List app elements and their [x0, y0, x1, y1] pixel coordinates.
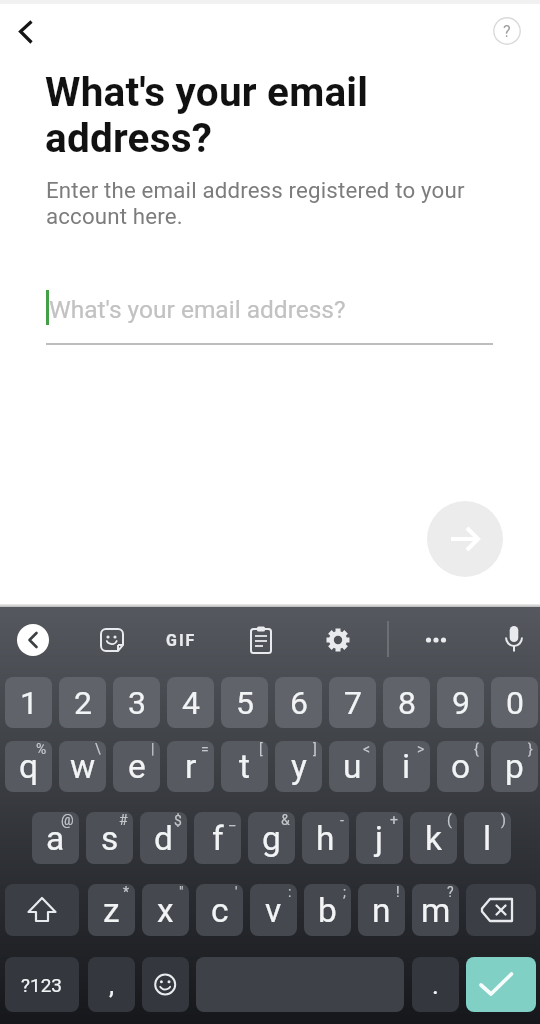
staticText: o	[451, 747, 471, 786]
button[interactable]: ?	[490, 14, 524, 48]
button[interactable]: s	[86, 812, 133, 864]
button[interactable]: q	[5, 741, 52, 792]
button[interactable]: t	[221, 741, 268, 792]
button[interactable]	[427, 501, 503, 577]
staticText: ]	[313, 741, 317, 757]
button[interactable]: k	[410, 812, 457, 864]
staticText: e	[128, 747, 146, 786]
button[interactable]: 2	[59, 677, 106, 728]
staticText: |	[151, 741, 155, 757]
button[interactable]: l	[464, 812, 511, 864]
button[interactable]	[8, 10, 50, 52]
staticText: $	[174, 812, 182, 828]
staticText: }	[528, 741, 533, 757]
staticText: a	[46, 819, 65, 858]
staticText: 1	[20, 684, 38, 722]
staticText: {	[474, 741, 479, 757]
staticText: !	[396, 884, 400, 900]
button[interactable]	[466, 957, 536, 1012]
staticText: Enter the email address registered to yo…	[46, 177, 465, 230]
button[interactable]: e	[113, 741, 160, 792]
button[interactable]: .	[412, 957, 459, 1012]
button[interactable]: d	[140, 812, 187, 864]
staticText: #	[119, 812, 128, 828]
button[interactable]: m	[412, 884, 459, 936]
button[interactable]	[241, 620, 281, 660]
button[interactable]: a	[32, 812, 79, 864]
button[interactable]: 8	[383, 677, 430, 728]
button[interactable]: f	[194, 812, 241, 864]
staticText: ;	[343, 884, 346, 900]
button[interactable]: x	[142, 884, 189, 936]
staticText: &	[281, 812, 290, 828]
button[interactable]: y	[275, 741, 322, 792]
staticText: [	[259, 741, 263, 757]
button[interactable]	[494, 620, 534, 660]
staticText: y	[291, 747, 307, 786]
button[interactable]: w	[59, 741, 106, 792]
staticText: GIF	[166, 631, 197, 650]
button[interactable]	[17, 624, 49, 656]
button[interactable]: GIF	[157, 624, 205, 656]
button[interactable]: 7	[329, 677, 376, 728]
button[interactable]	[92, 620, 132, 660]
button[interactable]: 0	[491, 677, 538, 728]
button[interactable]: j	[356, 812, 403, 864]
staticText: 5	[236, 684, 254, 722]
staticText: p	[505, 747, 524, 786]
button[interactable]: 3	[113, 677, 160, 728]
staticText: 8	[398, 684, 416, 722]
staticText: g	[262, 819, 281, 858]
staticText: k	[425, 819, 442, 858]
button[interactable]	[5, 884, 79, 936]
button[interactable]: 1	[5, 677, 52, 728]
staticText: x	[157, 891, 174, 930]
staticText: 7	[344, 684, 362, 722]
staticText: *	[123, 884, 130, 900]
staticText: ?	[503, 22, 511, 41]
staticText: n	[372, 891, 391, 930]
staticText: v	[265, 891, 282, 930]
button[interactable]: 6	[275, 677, 322, 728]
button[interactable]: ?123	[5, 957, 79, 1012]
button[interactable]: v	[250, 884, 297, 936]
button[interactable]: z	[88, 884, 135, 936]
button[interactable]: r	[167, 741, 214, 792]
staticText: _	[229, 812, 236, 828]
staticText: @	[61, 812, 74, 828]
staticText: >	[417, 741, 425, 757]
button[interactable]	[142, 957, 189, 1012]
staticText: "	[179, 884, 184, 900]
button[interactable]: c	[196, 884, 243, 936]
staticText: ?	[447, 884, 454, 900]
button[interactable]	[466, 884, 536, 936]
button[interactable]: i	[383, 741, 430, 792]
staticText: '	[235, 884, 238, 900]
staticText: =	[201, 741, 209, 757]
button[interactable]: h	[302, 812, 349, 864]
button[interactable]: u	[329, 741, 376, 792]
button[interactable]	[318, 620, 358, 660]
staticText: s	[101, 819, 119, 858]
button[interactable]: 9	[437, 677, 484, 728]
button[interactable]: p	[491, 741, 538, 792]
button[interactable]: ,	[88, 957, 135, 1012]
button[interactable]: n	[358, 884, 405, 936]
staticText: t	[239, 747, 250, 786]
staticText: r	[185, 747, 197, 786]
staticText: 2	[74, 684, 92, 722]
staticText: )	[501, 812, 506, 828]
staticText: -	[340, 812, 344, 828]
button[interactable]: g	[248, 812, 295, 864]
staticText: h	[316, 819, 335, 858]
button[interactable]: 4	[167, 677, 214, 728]
staticText: ,	[109, 970, 115, 1000]
staticText: m	[421, 891, 451, 930]
button[interactable]: b	[304, 884, 351, 936]
staticText: <	[363, 741, 371, 757]
staticText: w	[70, 747, 96, 786]
button[interactable]: o	[437, 741, 484, 792]
staticText: %	[36, 741, 47, 757]
button[interactable]: 5	[221, 677, 268, 728]
